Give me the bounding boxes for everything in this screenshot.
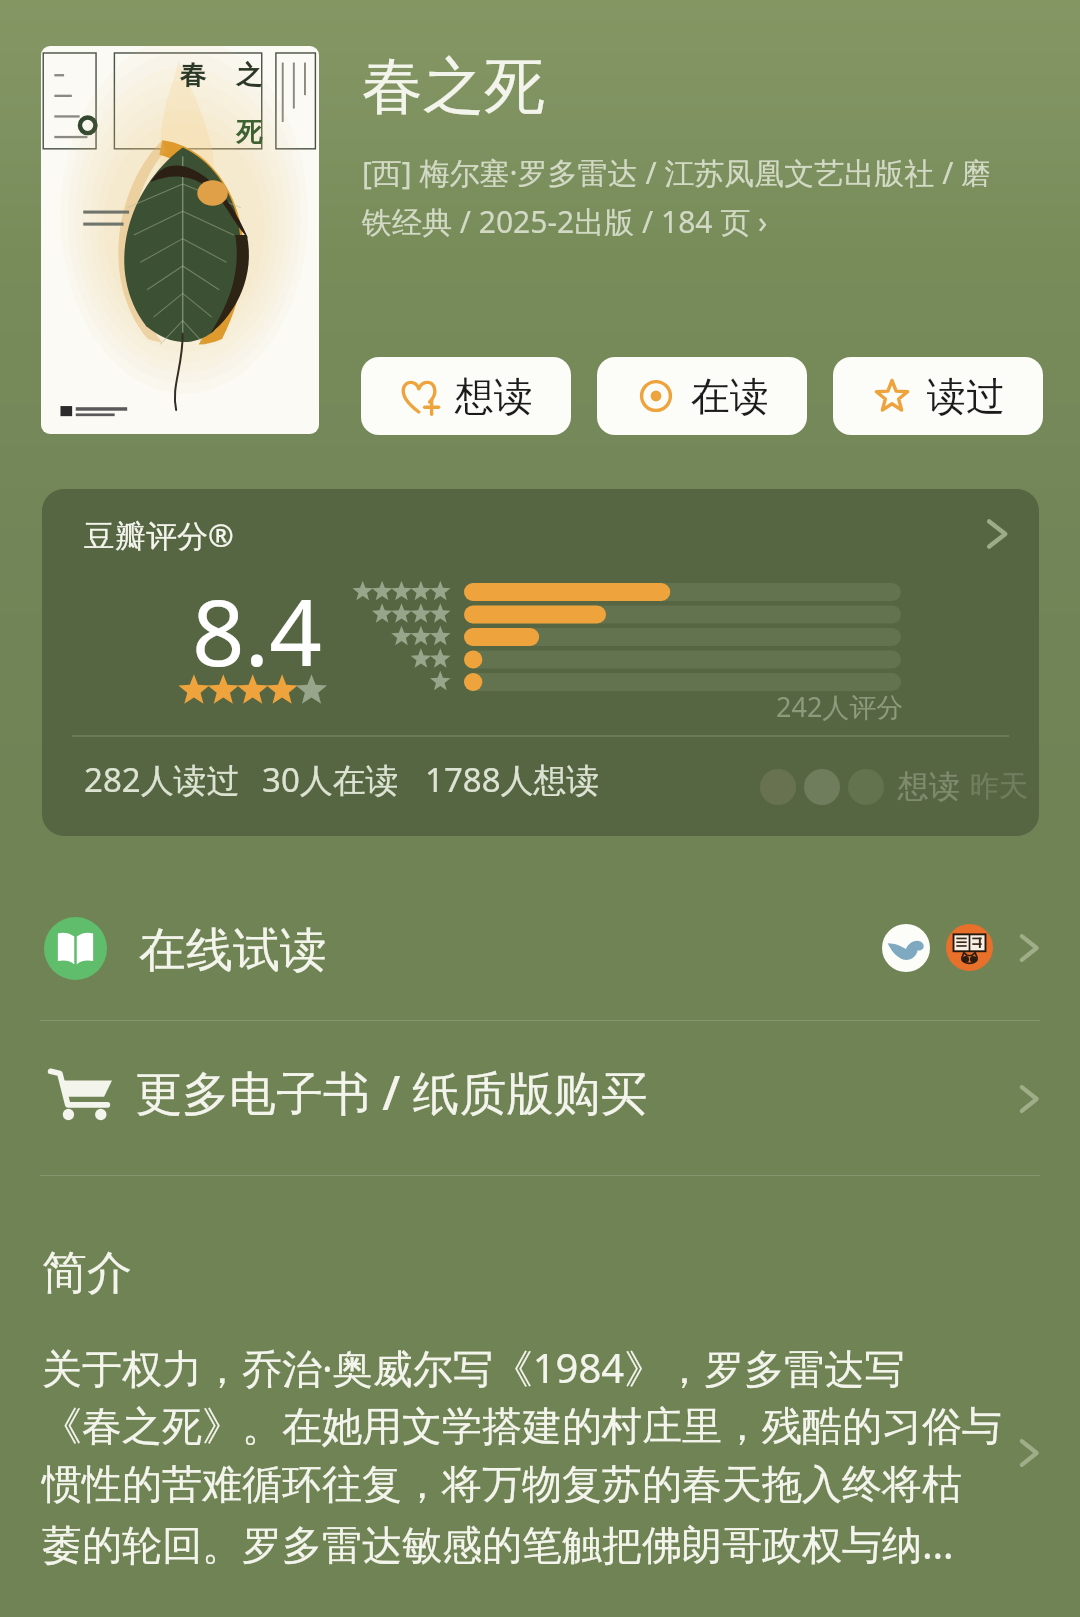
staticText: 282人读过 bbox=[84, 757, 240, 802]
button[interactable]: 读过 bbox=[833, 357, 1043, 435]
staticText: [西] 梅尔塞·罗多雷达 / 江苏凤凰文艺出版社 / 磨 铁经典 / 2025-… bbox=[362, 152, 1034, 242]
staticText: 在线试读 bbox=[139, 921, 327, 980]
staticText: 想读 bbox=[898, 767, 960, 806]
button[interactable]: 想读 bbox=[361, 357, 571, 435]
staticText: 想读 bbox=[455, 372, 533, 421]
staticText: 在读 bbox=[691, 372, 769, 421]
button[interactable]: 得到 bbox=[946, 924, 993, 971]
staticText: 昨天 bbox=[970, 768, 1028, 805]
staticText: 1788人想读 bbox=[425, 757, 600, 802]
staticText: 8.4 bbox=[192, 568, 322, 693]
button[interactable]: 春之死 书封 bbox=[41, 46, 319, 434]
staticText: 死 bbox=[236, 116, 262, 149]
button[interactable]: 在线试读 bbox=[0, 886, 1080, 1020]
staticText: 242人评分 bbox=[776, 688, 904, 725]
staticText: 简介 bbox=[42, 1245, 132, 1302]
button[interactable]: 在读 bbox=[597, 357, 807, 435]
staticText: 30人在读 bbox=[262, 757, 399, 802]
staticText: 春之死 bbox=[362, 48, 545, 125]
button[interactable]: 更多电子书 / 纸质版购买 bbox=[0, 1021, 1080, 1175]
button[interactable]: 豆瓣评分® bbox=[42, 489, 1039, 836]
staticText: 春 bbox=[180, 59, 206, 92]
button[interactable]: 简介 bbox=[0, 1245, 1080, 1570]
staticText: 关于权力，乔治·奥威尔写《1984》，罗多雷达写 《春之死》。在她用文学搭建的村… bbox=[42, 1340, 1032, 1570]
staticText: 之 bbox=[236, 59, 262, 92]
staticText: 豆瓣评分® bbox=[84, 514, 234, 556]
button[interactable]: 微信读书 bbox=[882, 924, 930, 972]
button[interactable]: [西] 梅尔塞·罗多雷达 / 江苏凤凰文艺出版社 / 磨 铁经典 / 2025-… bbox=[362, 145, 1034, 245]
staticText: 更多电子书 / 纸质版购买 bbox=[135, 1060, 648, 1124]
staticText: 读过 bbox=[927, 372, 1005, 421]
